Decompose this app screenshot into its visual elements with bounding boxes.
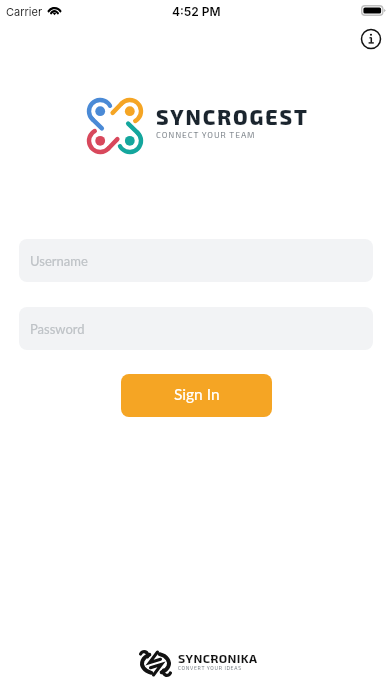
staticText: Password bbox=[30, 321, 85, 337]
staticText: Username bbox=[30, 253, 88, 269]
button[interactable]: Sign In bbox=[121, 374, 272, 417]
staticText: SYNCRONIKA bbox=[178, 651, 258, 666]
staticText: CONNECT YOUR TEAM bbox=[156, 130, 256, 140]
staticText: SYNCROGEST bbox=[156, 104, 309, 129]
staticText: CONVERT YOUR IDEAS bbox=[178, 665, 242, 671]
staticText: Sign In bbox=[174, 385, 220, 404]
staticText: Carrier bbox=[6, 5, 43, 18]
button[interactable]: Password bbox=[19, 307, 373, 350]
button[interactable]: Username bbox=[19, 239, 373, 282]
button[interactable]: Information bbox=[357, 25, 385, 53]
staticText: 4:52 PM bbox=[172, 4, 221, 19]
